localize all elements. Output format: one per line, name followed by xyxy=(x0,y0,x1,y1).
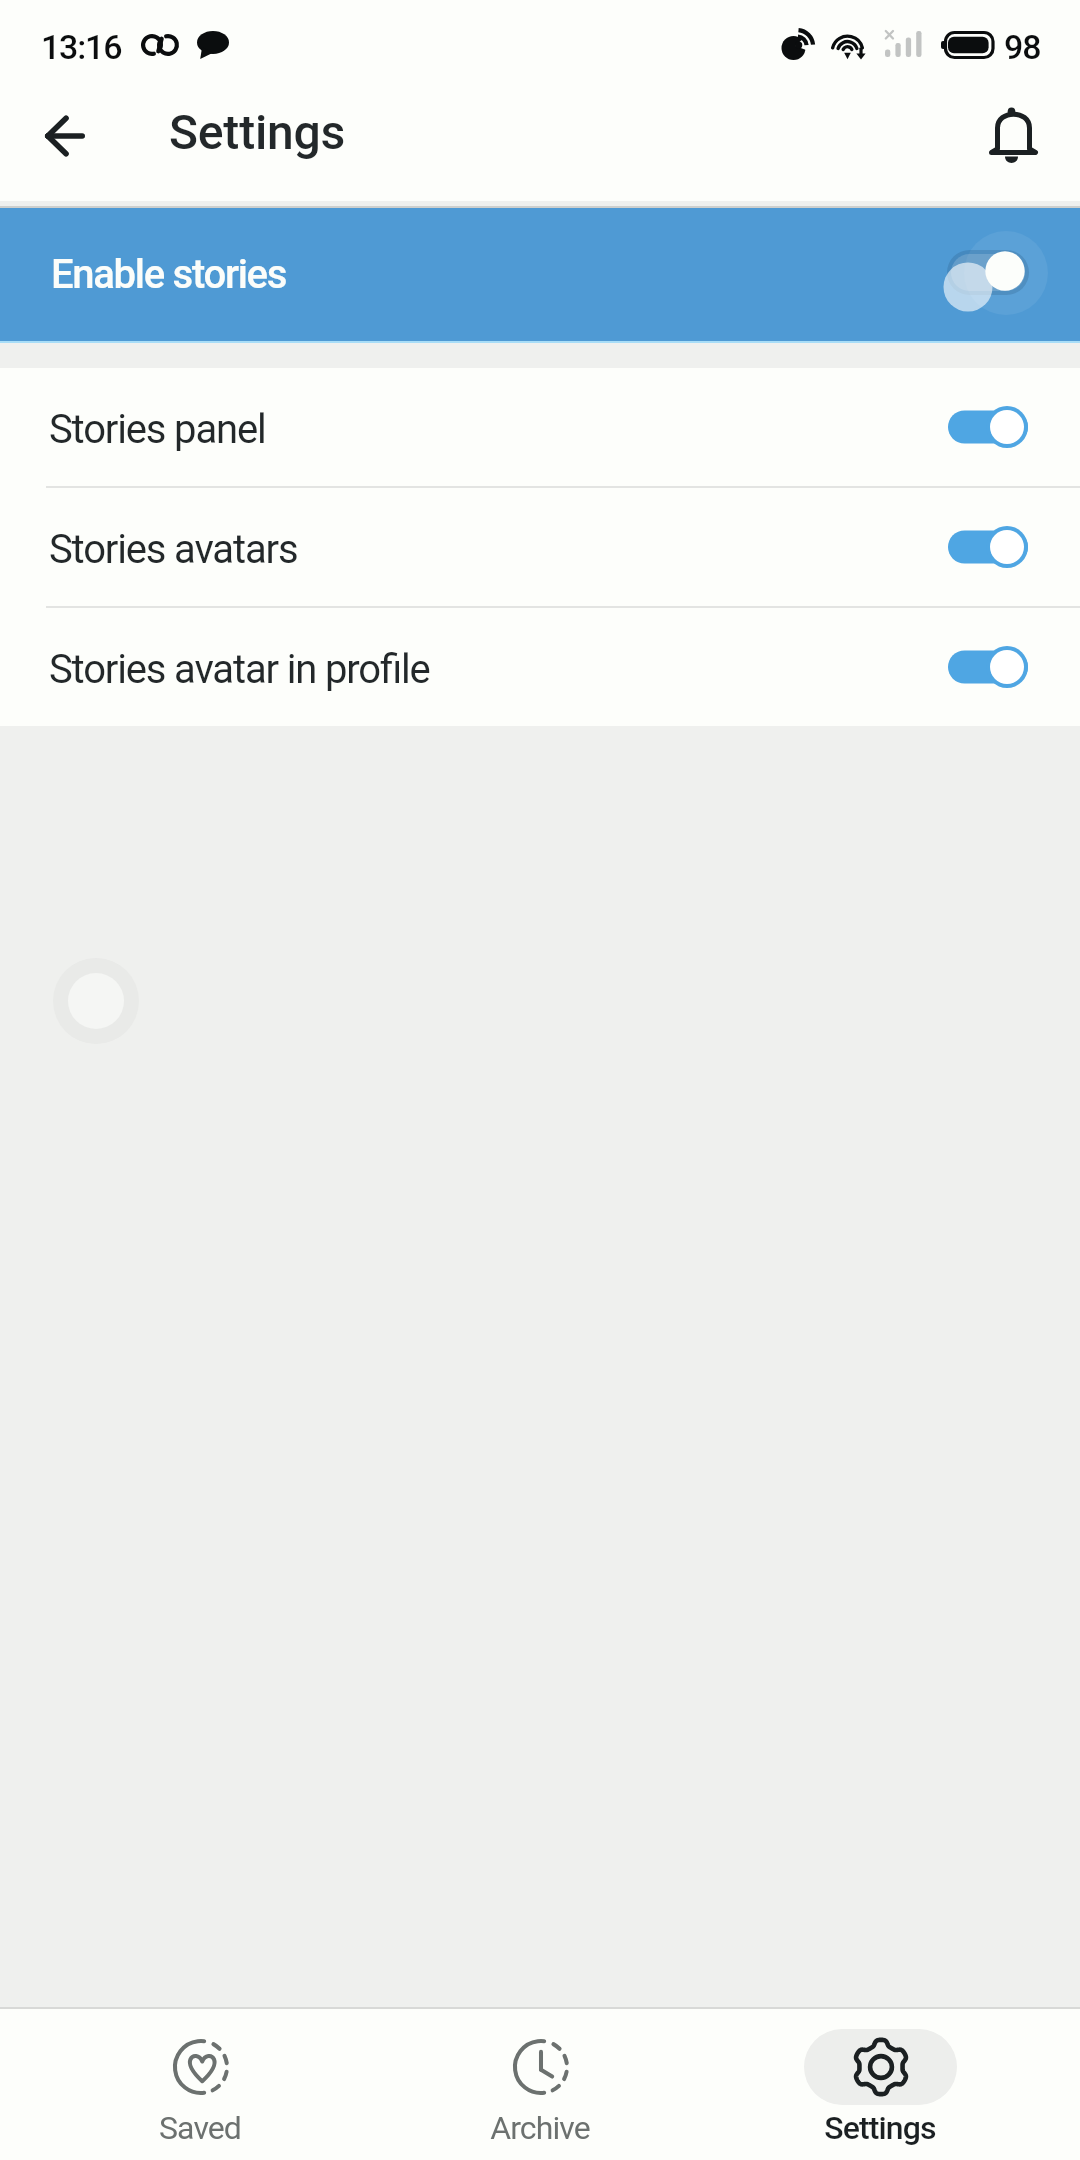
button[interactable]: Enable stories xyxy=(0,208,1080,341)
button[interactable]: Notifications xyxy=(972,93,1056,177)
staticText: 13:16 xyxy=(41,27,122,67)
staticText: Stories avatars xyxy=(49,526,298,573)
staticText: Settings xyxy=(824,2109,936,2147)
button[interactable]: Settings xyxy=(710,2009,1050,2147)
button[interactable]: Saved xyxy=(30,2009,370,2147)
button[interactable]: Back xyxy=(23,94,107,178)
button[interactable]: Stories avatar in profile xyxy=(0,608,1080,726)
button[interactable]: Stories avatars xyxy=(0,488,1080,606)
staticText: Saved xyxy=(159,2109,241,2147)
staticText: Stories avatar in profile xyxy=(49,646,430,693)
staticText: Enable stories xyxy=(51,251,287,298)
button[interactable]: Archive xyxy=(370,2009,710,2147)
staticText: Stories panel xyxy=(49,406,266,453)
staticText: Settings xyxy=(169,104,346,160)
staticText: 98 xyxy=(1004,27,1041,67)
staticText: Archive xyxy=(490,2109,590,2147)
button[interactable]: Stories panel xyxy=(0,368,1080,486)
